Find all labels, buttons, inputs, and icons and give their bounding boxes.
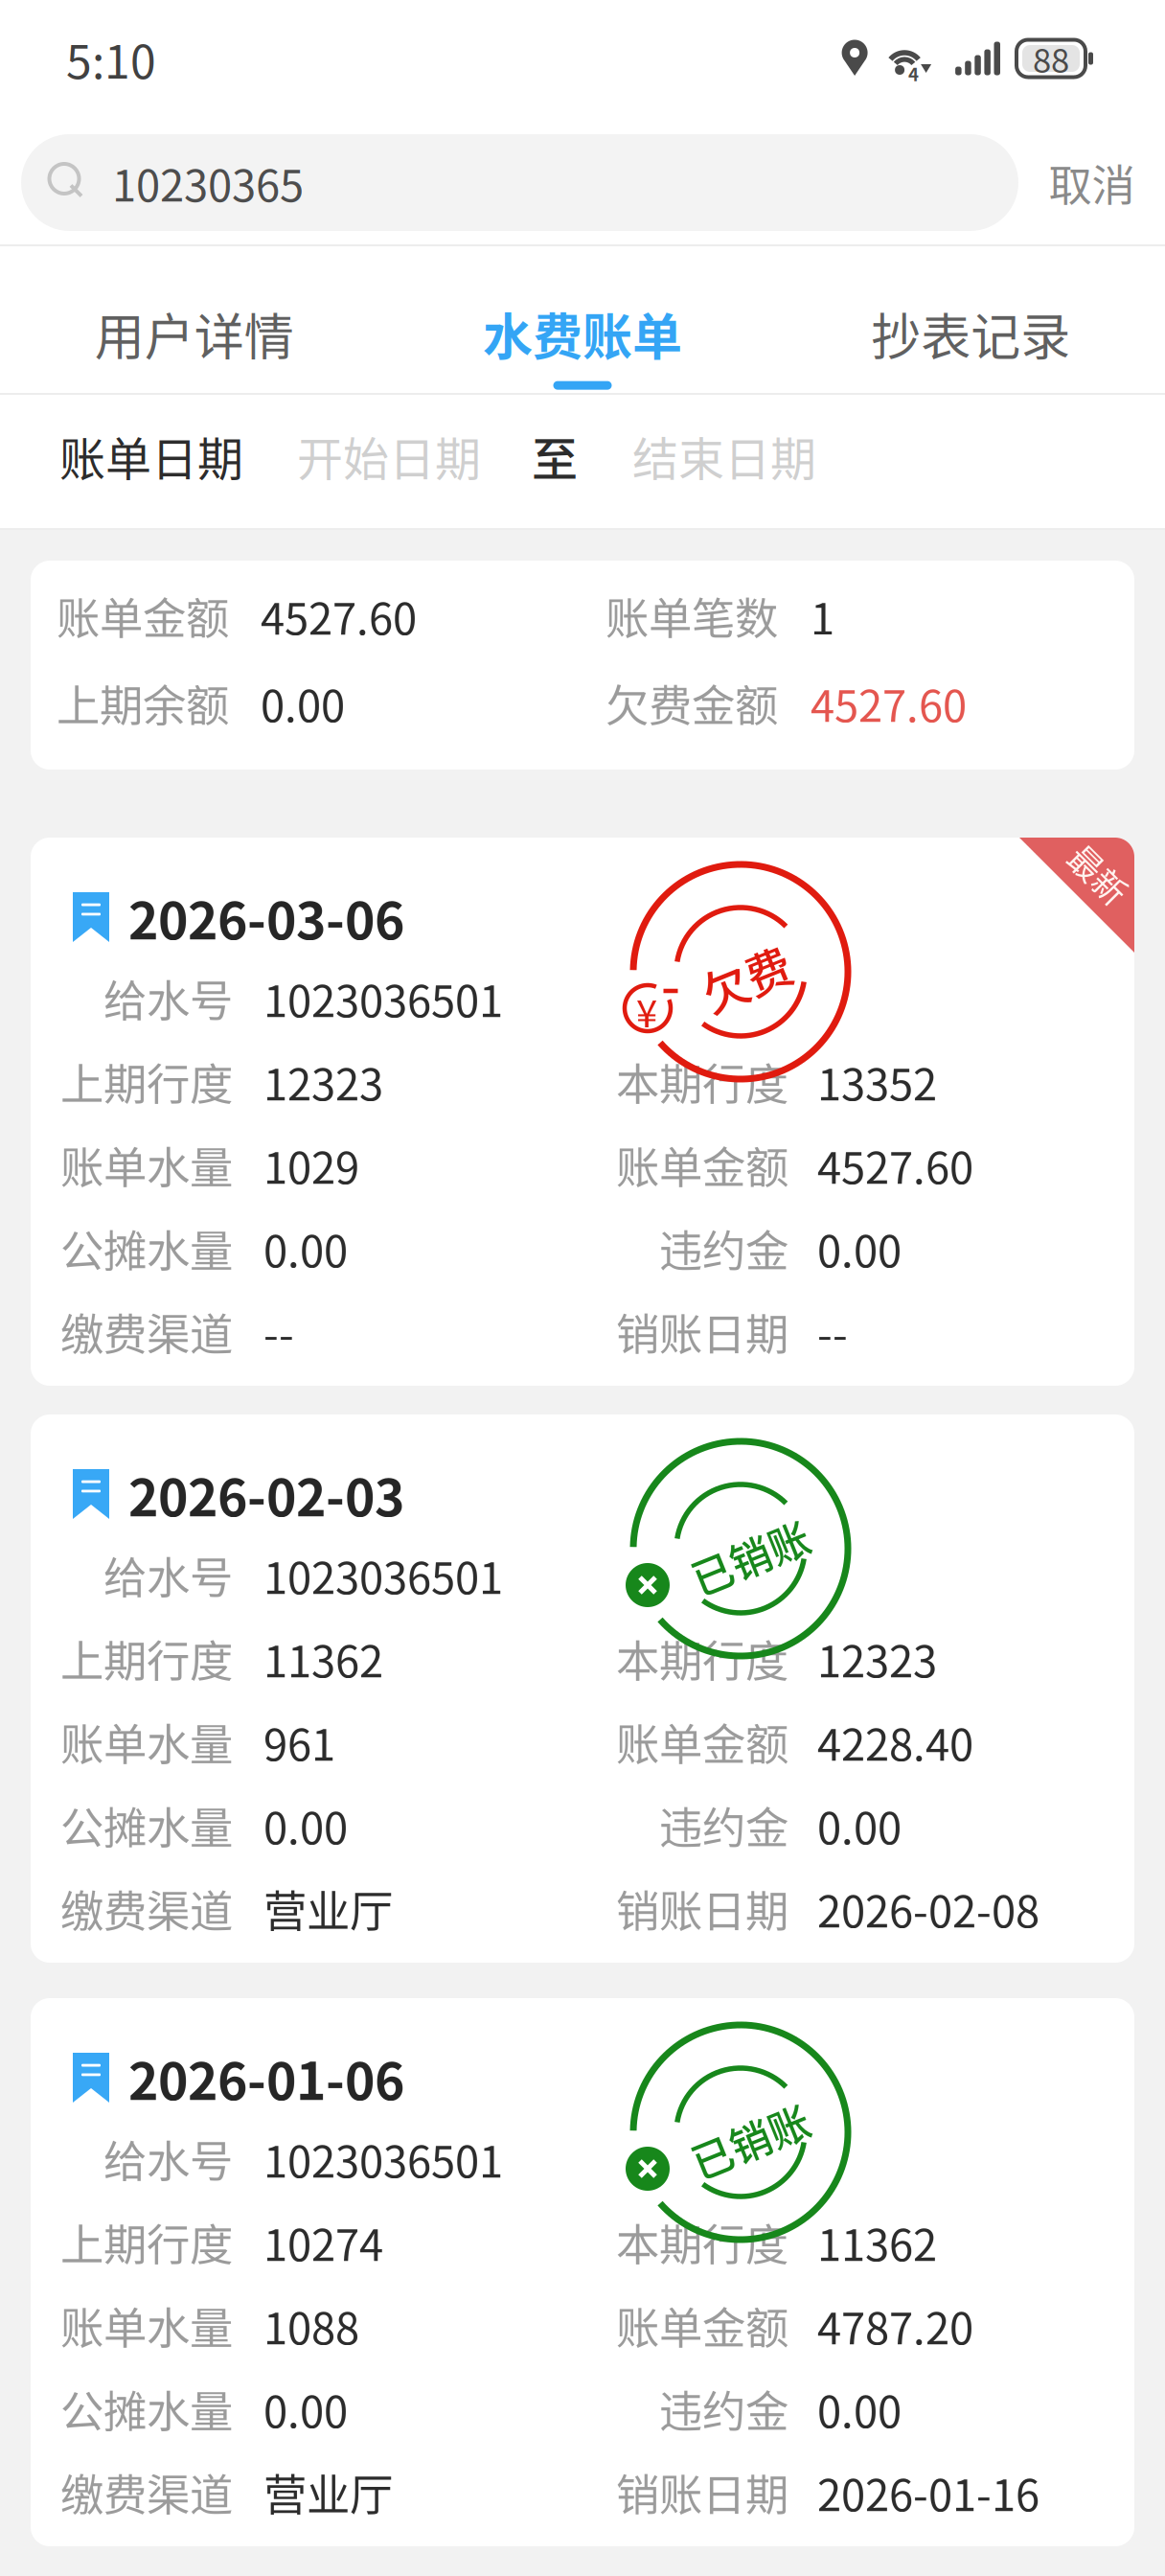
staticText: 上期行度 bbox=[60, 1050, 233, 1113]
staticText: 给水号 bbox=[103, 2127, 233, 2190]
staticText: 销账日期 bbox=[616, 2461, 788, 2524]
staticText: 0.00 bbox=[263, 1794, 348, 1857]
staticText: 本期行度 bbox=[616, 1050, 788, 1113]
staticText: 公摊水量 bbox=[60, 1794, 233, 1857]
staticText: 上期行度 bbox=[60, 2211, 233, 2273]
staticText: 给水号 bbox=[103, 967, 233, 1030]
staticText: 最新 bbox=[1065, 850, 1132, 898]
staticText: 欠费金额 bbox=[605, 672, 778, 734]
staticText: 账单水量 bbox=[60, 1133, 233, 1196]
staticText: 账单金额 bbox=[616, 2294, 788, 2357]
staticText: 1029 bbox=[263, 1133, 359, 1196]
staticText: 10274 bbox=[263, 2211, 383, 2273]
staticText: 违约金 bbox=[659, 1217, 788, 1280]
staticText: 961 bbox=[263, 1710, 335, 1773]
staticText: 欠费 bbox=[700, 944, 792, 1011]
staticText: 缴费渠道 bbox=[60, 1877, 233, 1940]
staticText: 0.00 bbox=[817, 1794, 902, 1857]
staticText: 0.00 bbox=[817, 2377, 902, 2440]
staticText: 账单金额 bbox=[57, 584, 229, 647]
staticText: 2026-02-03 bbox=[128, 1457, 404, 1531]
staticText: 已销账 bbox=[688, 1527, 812, 1586]
staticText: 4787.20 bbox=[817, 2294, 973, 2357]
staticText: 缴费渠道 bbox=[60, 1300, 233, 1363]
staticText: 本期行度 bbox=[616, 1627, 788, 1690]
staticText: 0.00 bbox=[817, 1217, 902, 1280]
staticText: 上期余额 bbox=[57, 672, 229, 734]
staticText: 13352 bbox=[817, 1050, 937, 1113]
staticText: 缴费渠道 bbox=[60, 2461, 233, 2524]
staticText: 用户详情 bbox=[95, 297, 294, 370]
staticText: 2026-03-06 bbox=[128, 880, 404, 954]
staticText: 88 bbox=[1033, 34, 1069, 83]
staticText: 1 bbox=[811, 584, 834, 647]
staticText: 0.00 bbox=[263, 2377, 348, 2440]
button[interactable]: 抄表记录 bbox=[777, 246, 1165, 393]
staticText: 账单金额 bbox=[616, 1133, 788, 1196]
button[interactable]: 水费账单 bbox=[388, 246, 777, 393]
staticText: 账单水量 bbox=[60, 2294, 233, 2357]
staticText: 4 bbox=[908, 60, 919, 86]
staticText: ¥ bbox=[636, 983, 657, 1039]
staticText: -- bbox=[817, 1300, 848, 1363]
staticText: 上期行度 bbox=[60, 1627, 233, 1690]
staticText: 至 bbox=[532, 422, 578, 489]
staticText: 2026-02-08 bbox=[817, 1877, 1039, 1940]
staticText: 销账日期 bbox=[616, 1300, 788, 1363]
staticText: 12323 bbox=[817, 1627, 937, 1690]
staticText: 4527.60 bbox=[261, 584, 417, 647]
staticText: 1088 bbox=[263, 2294, 359, 2357]
staticText: 给水号 bbox=[103, 1544, 233, 1606]
staticText: 公摊水量 bbox=[60, 2377, 233, 2440]
button[interactable]: 结束日期 bbox=[578, 405, 816, 506]
staticText: 违约金 bbox=[659, 2377, 788, 2440]
staticText: 11362 bbox=[263, 1627, 383, 1690]
staticText: 水费账单 bbox=[483, 297, 682, 370]
staticText: 2026-01-16 bbox=[817, 2461, 1039, 2524]
staticText: 结束日期 bbox=[632, 422, 816, 489]
staticText: 抄表记录 bbox=[871, 297, 1070, 370]
staticText: 账单日期 bbox=[59, 422, 243, 489]
staticText: 12323 bbox=[263, 1050, 383, 1113]
staticText: 违约金 bbox=[659, 1794, 788, 1857]
staticText: 1023036501 bbox=[263, 2127, 503, 2190]
staticText: 取消 bbox=[1049, 151, 1135, 214]
staticText: 账单水量 bbox=[60, 1710, 233, 1773]
button[interactable]: 取消 bbox=[1018, 134, 1165, 231]
staticText: 0.00 bbox=[263, 1217, 348, 1280]
staticText: 账单金额 bbox=[616, 1710, 788, 1773]
staticText: 4527.60 bbox=[817, 1133, 973, 1196]
staticText: 销账日期 bbox=[616, 1877, 788, 1940]
staticText: 4527.60 bbox=[811, 672, 967, 734]
button[interactable]: 用户详情 bbox=[0, 246, 388, 393]
staticText: 本期行度 bbox=[616, 2211, 788, 2273]
staticText: 2026-01-06 bbox=[128, 2041, 404, 2115]
staticText: 账单笔数 bbox=[605, 584, 778, 647]
staticText: 11362 bbox=[817, 2211, 937, 2273]
button[interactable]: 开始日期 bbox=[243, 405, 481, 506]
staticText: 5:10 bbox=[66, 25, 156, 92]
staticText: 开始日期 bbox=[297, 422, 481, 489]
staticText: 1023036501 bbox=[263, 1544, 503, 1606]
staticText: -- bbox=[263, 1300, 294, 1363]
staticText: 营业厅 bbox=[263, 2461, 393, 2524]
staticText: 0.00 bbox=[261, 672, 345, 734]
staticText: 10230365 bbox=[112, 151, 304, 214]
staticText: 已销账 bbox=[688, 2110, 812, 2170]
staticText: 1023036501 bbox=[263, 967, 503, 1030]
staticText: 公摊水量 bbox=[60, 1217, 233, 1280]
staticText: 营业厅 bbox=[263, 1877, 393, 1940]
staticText: 4228.40 bbox=[817, 1710, 973, 1773]
